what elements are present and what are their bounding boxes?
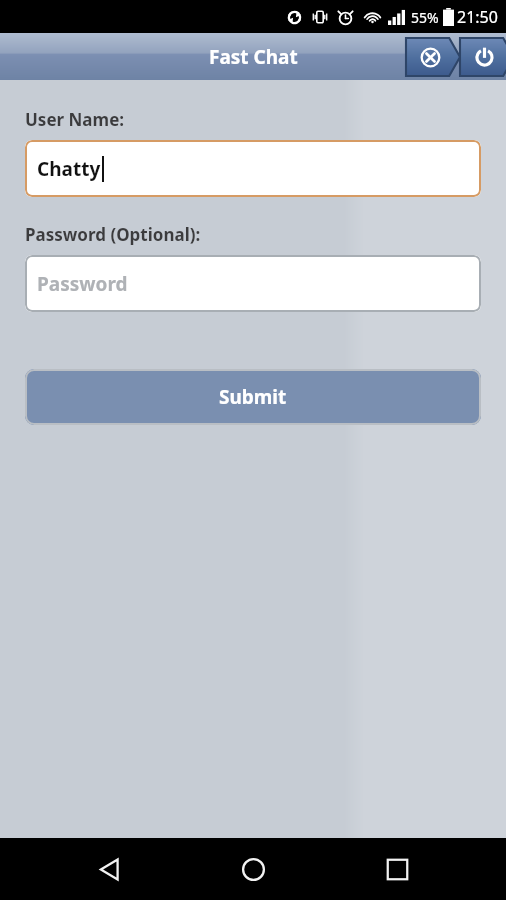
button[interactable]: Back — [74, 838, 144, 900]
button[interactable]: Password — [25, 255, 481, 312]
button[interactable]: Home — [218, 838, 288, 900]
button[interactable]: Close — [406, 38, 460, 76]
button[interactable]: Submit — [25, 369, 481, 425]
staticText: User Name: — [25, 108, 125, 131]
staticText: Chatty — [37, 156, 101, 182]
button[interactable]: Power off — [460, 38, 506, 76]
staticText: Submit — [219, 384, 287, 410]
staticText: 55% — [411, 8, 439, 27]
staticText: Password (Optional): — [25, 223, 201, 246]
button[interactable]: Chatty — [25, 140, 481, 197]
staticText: Fast Chat — [209, 44, 298, 70]
staticText: Password — [37, 271, 128, 297]
button[interactable]: Recent apps — [362, 838, 432, 900]
staticText: 21:50 — [457, 6, 498, 28]
